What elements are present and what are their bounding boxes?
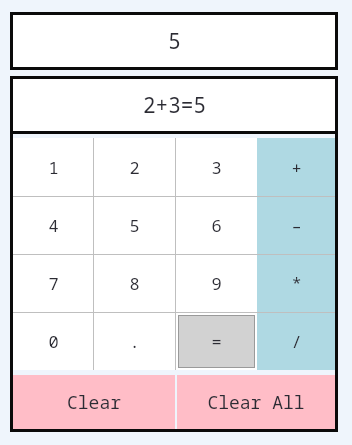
staticText: 6 <box>211 214 222 237</box>
staticText: * <box>291 272 302 295</box>
staticText: . <box>129 330 140 353</box>
button[interactable]: Plus <box>257 138 335 196</box>
button[interactable]: 6 <box>176 197 257 254</box>
button[interactable]: Clear All <box>177 375 335 429</box>
staticText: 1 <box>48 156 59 179</box>
button[interactable]: 0 <box>13 313 93 370</box>
button[interactable]: 3 <box>176 138 257 196</box>
button[interactable]: = <box>178 315 255 368</box>
staticText: 9 <box>211 272 222 295</box>
staticText: – <box>291 214 302 237</box>
button[interactable]: Multiply <box>257 255 335 312</box>
staticText: / <box>291 330 302 353</box>
staticText: Clear All <box>207 390 305 415</box>
button[interactable]: 5 <box>94 197 175 254</box>
button[interactable]: 7 <box>13 255 93 312</box>
button[interactable]: Minus <box>257 197 335 254</box>
button[interactable]: 4 <box>13 197 93 254</box>
staticText: 5 <box>168 27 181 56</box>
staticText: 3 <box>211 156 222 179</box>
staticText: 5 <box>129 214 140 237</box>
staticText: 8 <box>129 272 140 295</box>
staticText: Clear <box>67 390 121 415</box>
button[interactable]: Decimal point <box>94 313 175 370</box>
staticText: 7 <box>48 272 59 295</box>
staticText: 0 <box>48 330 59 353</box>
button[interactable]: Clear <box>13 375 175 429</box>
staticText: 4 <box>48 214 59 237</box>
button[interactable]: Divide <box>257 313 335 370</box>
button[interactable]: 1 <box>13 138 93 196</box>
button[interactable]: 9 <box>176 255 257 312</box>
staticText: = <box>211 330 222 353</box>
button[interactable]: 8 <box>94 255 175 312</box>
staticText: + <box>291 156 302 179</box>
staticText: 2 <box>129 156 140 179</box>
staticText: 2+3=5 <box>143 91 206 120</box>
button[interactable]: 2 <box>94 138 175 196</box>
